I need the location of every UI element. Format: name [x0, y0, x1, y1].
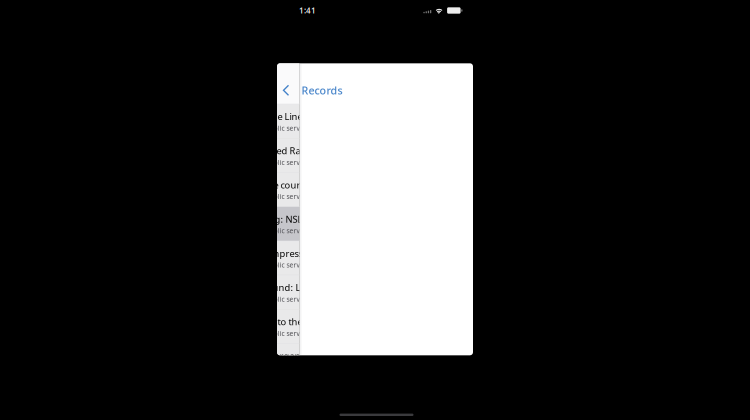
staticText: Public service [265, 124, 308, 133]
button[interactable]: Background: Li [103, 275, 299, 309]
staticText: Unexpected Rai [235, 144, 302, 157]
staticText: Public service [265, 158, 308, 167]
staticText: Reorgani [262, 350, 302, 362]
button[interactable]: Unexpected Rai [103, 138, 299, 173]
staticText: Records [301, 83, 342, 97]
staticText: Public service [265, 226, 308, 235]
button[interactable]: First impress [103, 241, 299, 275]
staticText: Back to the [255, 315, 302, 328]
staticText: First impress [248, 247, 302, 259]
button[interactable]: Night in the coun [103, 173, 299, 207]
staticText: Public service [265, 295, 308, 304]
staticText: Public service [265, 329, 308, 338]
button[interactable]: Records [292, 77, 342, 103]
staticText: Debugging: NSL [230, 213, 302, 225]
button[interactable]: Reorgani [103, 344, 299, 378]
staticText: Night in the coun [228, 179, 302, 191]
staticText: Background: Li [236, 281, 302, 294]
button[interactable]: Crossing the Line [103, 104, 299, 138]
staticText: 1:41 [299, 5, 316, 16]
button[interactable]: Back to the [103, 309, 299, 344]
staticText: Public service [265, 260, 308, 269]
button[interactable]: Debugging: NSL [103, 207, 299, 241]
staticText: Public service [265, 192, 308, 201]
button[interactable]: Back [279, 70, 292, 111]
staticText: Crossing the Line [228, 110, 302, 123]
